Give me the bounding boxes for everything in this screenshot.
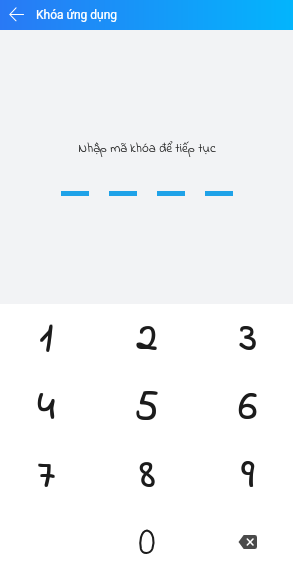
staticText: Khóa ứng dụng (36, 8, 117, 22)
staticText: 9 (241, 446, 254, 507)
staticText: 3 (240, 308, 258, 369)
staticText: Nhập mã khóa để tiếp tục (78, 139, 216, 158)
button[interactable]: 1 (0, 304, 96, 373)
button[interactable]: Back (0, 0, 32, 30)
staticText: 2 (137, 308, 158, 369)
staticText: 9 (242, 446, 255, 507)
staticText: 8 (140, 445, 156, 506)
staticText: 8 (139, 445, 155, 506)
button[interactable]: Delete (197, 510, 293, 568)
staticText: 9 (242, 445, 255, 506)
staticText: Nhập mã khóa để tiếp tục (78, 139, 216, 158)
button[interactable]: 6 (197, 373, 293, 442)
staticText: 4 (38, 378, 56, 439)
staticText: 2 (136, 308, 157, 369)
staticText: 1 (40, 309, 54, 370)
button[interactable]: 5 (96, 373, 197, 442)
staticText: 6 (239, 377, 258, 438)
button[interactable]: 8 (96, 441, 197, 510)
staticText: 1 (40, 308, 54, 369)
staticText: 4 (38, 377, 56, 438)
staticText: 6 (239, 378, 258, 439)
staticText: 3 (240, 309, 258, 370)
button[interactable] (96, 510, 197, 568)
staticText: 5 (135, 378, 160, 439)
staticText: 3 (239, 308, 257, 369)
staticText: 3 (239, 309, 257, 370)
staticText: 7 (37, 446, 55, 507)
staticText: 7 (38, 446, 56, 507)
button[interactable]: 3 (197, 304, 293, 373)
staticText: 1 (39, 309, 53, 370)
button[interactable]: 4 (0, 373, 96, 442)
staticText: 9 (241, 445, 254, 506)
staticText: 6 (238, 377, 257, 438)
button[interactable]: 2 (96, 304, 197, 373)
staticText: 6 (238, 378, 257, 439)
staticText: 1 (39, 308, 53, 369)
staticText: 8 (140, 446, 156, 507)
staticText: 5 (134, 378, 159, 439)
button[interactable]: 7 (0, 441, 96, 510)
staticText: 5 (134, 377, 159, 438)
staticText: 8 (139, 446, 155, 507)
staticText: 4 (37, 377, 55, 438)
staticText: 7 (38, 445, 56, 506)
staticText: 5 (135, 377, 160, 438)
button[interactable]: 9 (197, 441, 293, 510)
staticText: 7 (37, 445, 55, 506)
staticText: 2 (137, 309, 158, 370)
staticText: 4 (37, 378, 55, 439)
staticText: 2 (136, 309, 157, 370)
